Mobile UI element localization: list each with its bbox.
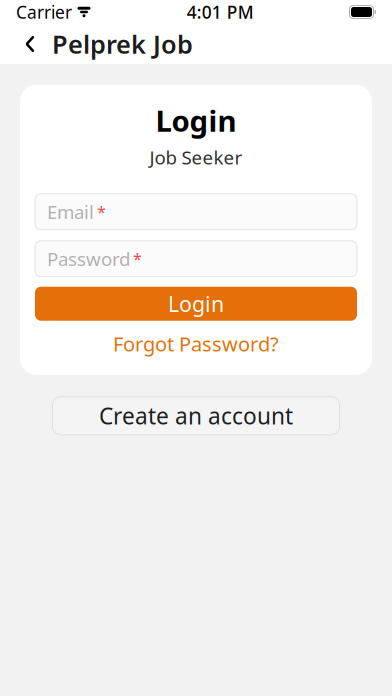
button[interactable]: Create an account [52, 397, 339, 435]
staticText: Password [47, 246, 130, 271]
staticText: Login [168, 290, 224, 318]
staticText: Carrier [16, 0, 72, 23]
staticText: Job Seeker [149, 145, 242, 170]
button[interactable]: Login [35, 287, 357, 321]
staticText: 4:01 PM [187, 0, 254, 23]
staticText: Forgot Password? [113, 330, 279, 357]
staticText: Login [155, 101, 236, 140]
staticText: Email [47, 199, 94, 224]
button[interactable]: Forgot Password? [35, 329, 357, 359]
staticText: Pelprek Job [52, 27, 193, 61]
staticText: * [97, 201, 106, 222]
button[interactable]: Back [8, 24, 52, 64]
staticText: * [133, 248, 142, 269]
staticText: Create an account [99, 401, 293, 431]
